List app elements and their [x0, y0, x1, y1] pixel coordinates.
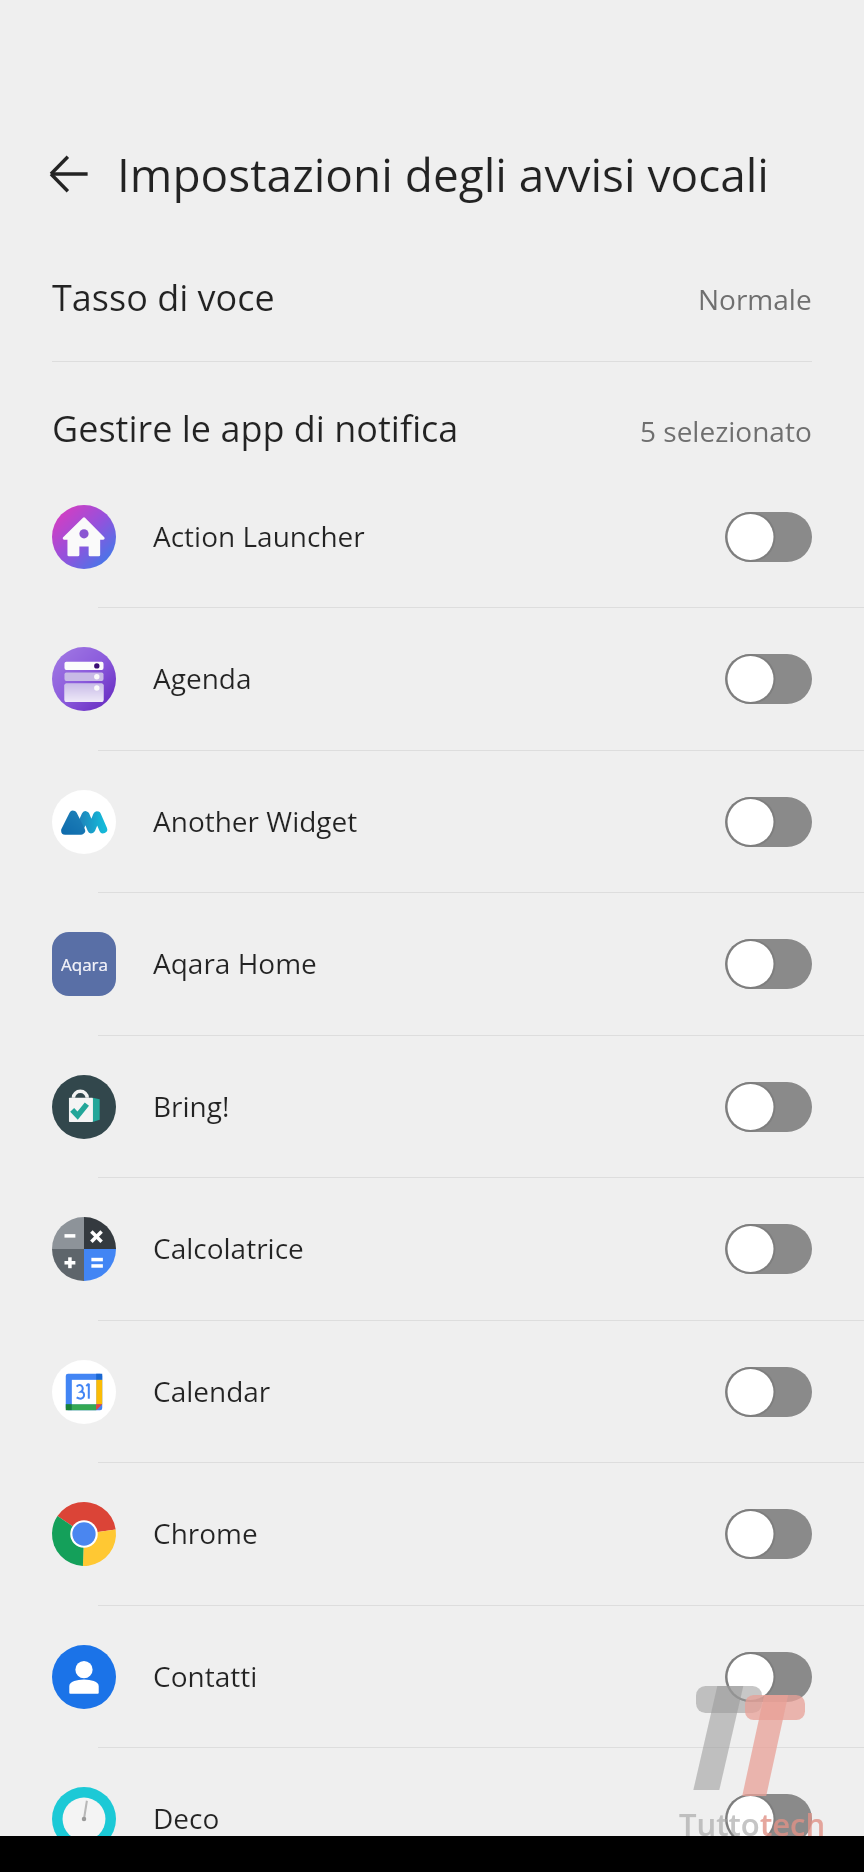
- button[interactable]: Action Launcher: [0, 465, 864, 608]
- staticText: Gestire le app di notifica: [52, 404, 640, 453]
- button[interactable]: Agenda: [0, 607, 864, 750]
- staticText: Impostazioni degli avvisi vocali: [117, 143, 769, 206]
- button[interactable]: Contatti: [0, 1605, 864, 1748]
- staticText: Tasso di voce: [52, 273, 698, 322]
- button[interactable]: Attiva notifiche vocali per Bring!: [725, 1082, 812, 1132]
- button[interactable]: Aqara: [0, 892, 864, 1035]
- staticText: Aqara Home: [153, 944, 725, 982]
- button[interactable]: Attiva notifiche vocali per Calendar: [725, 1367, 812, 1417]
- staticText: 5 selezionato: [640, 412, 812, 450]
- button[interactable]: Back: [43, 148, 95, 200]
- button[interactable]: Attiva notifiche vocali per Another Widg…: [725, 797, 812, 847]
- staticText: Agenda: [153, 659, 725, 697]
- staticText: Calcolatrice: [153, 1229, 725, 1267]
- button[interactable]: Deco: [0, 1747, 864, 1872]
- staticText: Calendar: [153, 1372, 725, 1410]
- staticText: Action Launcher: [153, 517, 725, 555]
- button[interactable]: Attiva notifiche vocali per Calcolatrice: [725, 1224, 812, 1274]
- button[interactable]: Calendar: [0, 1320, 864, 1463]
- staticText: tech: [760, 1803, 826, 1845]
- staticText: Aqara: [61, 953, 108, 976]
- staticText: Another Widget: [153, 802, 725, 840]
- button[interactable]: Attiva notifiche vocali per Action Launc…: [725, 512, 812, 562]
- button[interactable]: Attiva notifiche vocali per Aqara Home: [725, 939, 812, 989]
- button[interactable]: Bring!: [0, 1035, 864, 1178]
- staticText: Contatti: [153, 1657, 725, 1695]
- button[interactable]: Calcolatrice: [0, 1177, 864, 1320]
- button[interactable]: Attiva notifiche vocali per Chrome: [725, 1509, 812, 1559]
- staticText: Tutto: [679, 1803, 760, 1845]
- button[interactable]: Another Widget: [0, 750, 864, 893]
- staticText: Bring!: [153, 1087, 725, 1125]
- button[interactable]: Attiva notifiche vocali per Deco: [725, 1794, 812, 1844]
- button[interactable]: Attiva notifiche vocali per Contatti: [725, 1652, 812, 1702]
- button[interactable]: Attiva notifiche vocali per Agenda: [725, 654, 812, 704]
- button[interactable]: Chrome: [0, 1462, 864, 1605]
- staticText: Deco: [153, 1799, 725, 1837]
- staticText: Normale: [698, 280, 812, 318]
- staticText: Chrome: [153, 1514, 725, 1552]
- button[interactable]: Tasso di voce: [0, 258, 864, 336]
